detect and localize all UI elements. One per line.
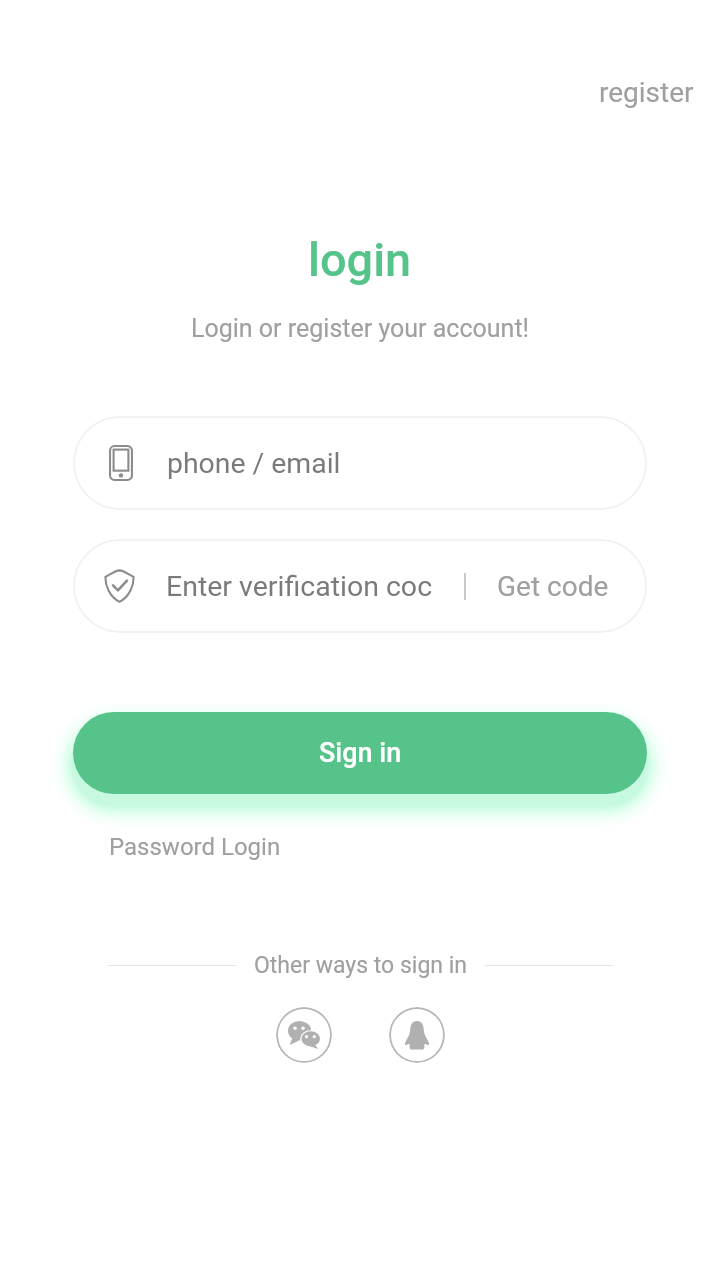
staticText: Enter verification coc — [166, 570, 433, 603]
staticText: Get code — [497, 570, 609, 603]
button[interactable]: Sign in with QQ — [389, 1007, 445, 1063]
staticText: register — [599, 76, 694, 109]
button[interactable]: register — [587, 70, 706, 115]
button[interactable]: Enter verification coc — [73, 569, 433, 603]
staticText: Login or register your account! — [191, 314, 530, 343]
button[interactable]: Get code — [466, 558, 640, 615]
button[interactable]: Password Login — [97, 825, 293, 869]
button[interactable]: Sign in with WeChat — [276, 1007, 332, 1063]
staticText: phone / email — [167, 447, 341, 480]
staticText: Password Login — [109, 833, 281, 861]
button[interactable]: phone / email — [73, 416, 647, 510]
staticText: Other ways to sign in — [254, 952, 467, 979]
button[interactable]: Sign in — [73, 712, 647, 794]
staticText: Sign in — [319, 737, 402, 769]
staticText: login — [308, 233, 412, 288]
